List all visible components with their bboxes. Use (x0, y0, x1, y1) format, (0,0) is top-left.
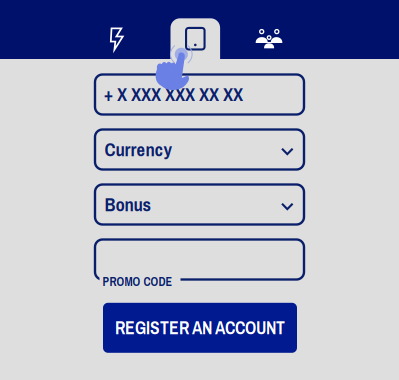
button[interactable]: Currency (95, 129, 304, 169)
staticText: Currency (104, 137, 172, 162)
button[interactable]: Bonus (95, 184, 304, 224)
staticText: PROMO CODE (102, 274, 172, 290)
button[interactable]: Partners (233, 9, 305, 68)
staticText: Bonus (104, 192, 151, 217)
button[interactable]: Promotions (81, 9, 153, 68)
button[interactable]: REGISTER AN ACCOUNT (103, 303, 297, 353)
staticText: + X XXX XXX XX XX (104, 82, 243, 107)
staticText: REGISTER AN ACCOUNT (115, 316, 285, 340)
button[interactable]: + X XXX XXX XX XX (95, 74, 304, 114)
button[interactable]: Register (159, 9, 231, 68)
